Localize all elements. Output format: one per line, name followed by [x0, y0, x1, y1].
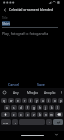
staticText: k — [51, 106, 53, 110]
button[interactable]: Back — [0, 5, 9, 14]
button[interactable]: l — [55, 105, 60, 110]
staticText: Shirt — [2, 21, 10, 26]
button[interactable]: q — [1, 98, 7, 103]
button[interactable]: j — [43, 105, 48, 110]
button[interactable]: v — [31, 112, 36, 117]
staticText: w — [10, 99, 13, 103]
button[interactable]: Mhojko — [24, 88, 41, 97]
staticText: h — [39, 106, 41, 110]
staticText: ?123 — [3, 121, 9, 124]
button[interactable]: a — [4, 105, 10, 110]
button[interactable]: . — [46, 119, 52, 125]
staticText: x — [20, 113, 22, 117]
button[interactable]: t — [28, 98, 33, 103]
button[interactable]: Any — [8, 88, 24, 97]
other: Hide keyboard — [55, 133, 58, 136]
staticText: j — [45, 106, 46, 110]
button[interactable]: k — [49, 105, 54, 110]
staticText: c — [27, 113, 29, 117]
staticText: d — [20, 106, 22, 110]
button[interactable]: y — [34, 98, 39, 103]
staticText: n — [45, 113, 47, 117]
button[interactable]: Enter — [53, 119, 63, 125]
staticText: Mhojko — [27, 91, 39, 95]
staticText: v — [33, 113, 35, 117]
staticText: e — [17, 99, 19, 103]
button[interactable]: ?123 — [1, 119, 11, 125]
button[interactable]: b — [37, 112, 42, 117]
staticText: y — [36, 99, 38, 103]
button[interactable]: Cancel — [0, 81, 27, 88]
staticText: z — [13, 113, 15, 117]
button[interactable]: Keyboard settings — [0, 88, 8, 97]
button[interactable]: w — [8, 98, 14, 103]
staticText: Title — [2, 16, 8, 20]
button[interactable]: u — [40, 98, 45, 103]
button[interactable]: e — [15, 98, 21, 103]
staticText: p — [60, 99, 62, 103]
button[interactable]: i — [46, 98, 51, 103]
other: Shift — [4, 113, 7, 116]
button[interactable]: Anoplio — [41, 88, 58, 97]
staticText: i — [48, 99, 49, 103]
button[interactable]: m — [49, 112, 54, 117]
staticText: Save — [37, 82, 45, 87]
button[interactable] — [19, 119, 45, 125]
staticText: s — [13, 106, 15, 110]
button[interactable]: Backspace — [55, 112, 63, 117]
staticText: q — [3, 99, 5, 103]
button[interactable]: p — [58, 98, 63, 103]
button[interactable]: s — [11, 105, 17, 110]
button[interactable]: z — [11, 112, 17, 117]
staticText: . — [49, 120, 50, 124]
staticText: Cancel — [8, 82, 20, 87]
staticText: Play, fotografi o fotogarafia — [2, 31, 49, 36]
staticText: m — [50, 113, 53, 117]
other: Enter — [57, 121, 60, 124]
staticText: Any — [13, 91, 19, 95]
button[interactable]: n — [43, 112, 48, 117]
button[interactable]: o — [52, 98, 57, 103]
button[interactable]: Save — [27, 81, 54, 88]
staticText: , — [15, 120, 16, 124]
other: Backspace — [57, 113, 61, 116]
button[interactable]: Shift — [1, 112, 10, 117]
button[interactable]: More options — [58, 88, 64, 97]
staticText: f — [27, 106, 28, 110]
staticText: b — [39, 113, 41, 117]
staticText: u — [42, 99, 44, 103]
button[interactable]: r — [22, 98, 27, 103]
button[interactable]: x — [18, 112, 24, 117]
button[interactable]: h — [37, 105, 42, 110]
staticText: t — [30, 99, 32, 103]
staticText: l — [57, 106, 58, 110]
button[interactable]: c — [25, 112, 30, 117]
button[interactable]: , — [12, 119, 18, 125]
staticText: Anoplio — [44, 91, 56, 95]
button[interactable]: g — [31, 105, 36, 110]
staticText: o — [54, 99, 56, 103]
staticText: r — [24, 99, 26, 103]
button[interactable]: Shirt — [2, 21, 10, 26]
button[interactable]: d — [18, 105, 24, 110]
staticText: a — [6, 106, 8, 110]
button[interactable]: f — [25, 105, 30, 110]
staticText: g — [33, 106, 35, 110]
staticText: Celestial ornament blended — [9, 7, 54, 12]
